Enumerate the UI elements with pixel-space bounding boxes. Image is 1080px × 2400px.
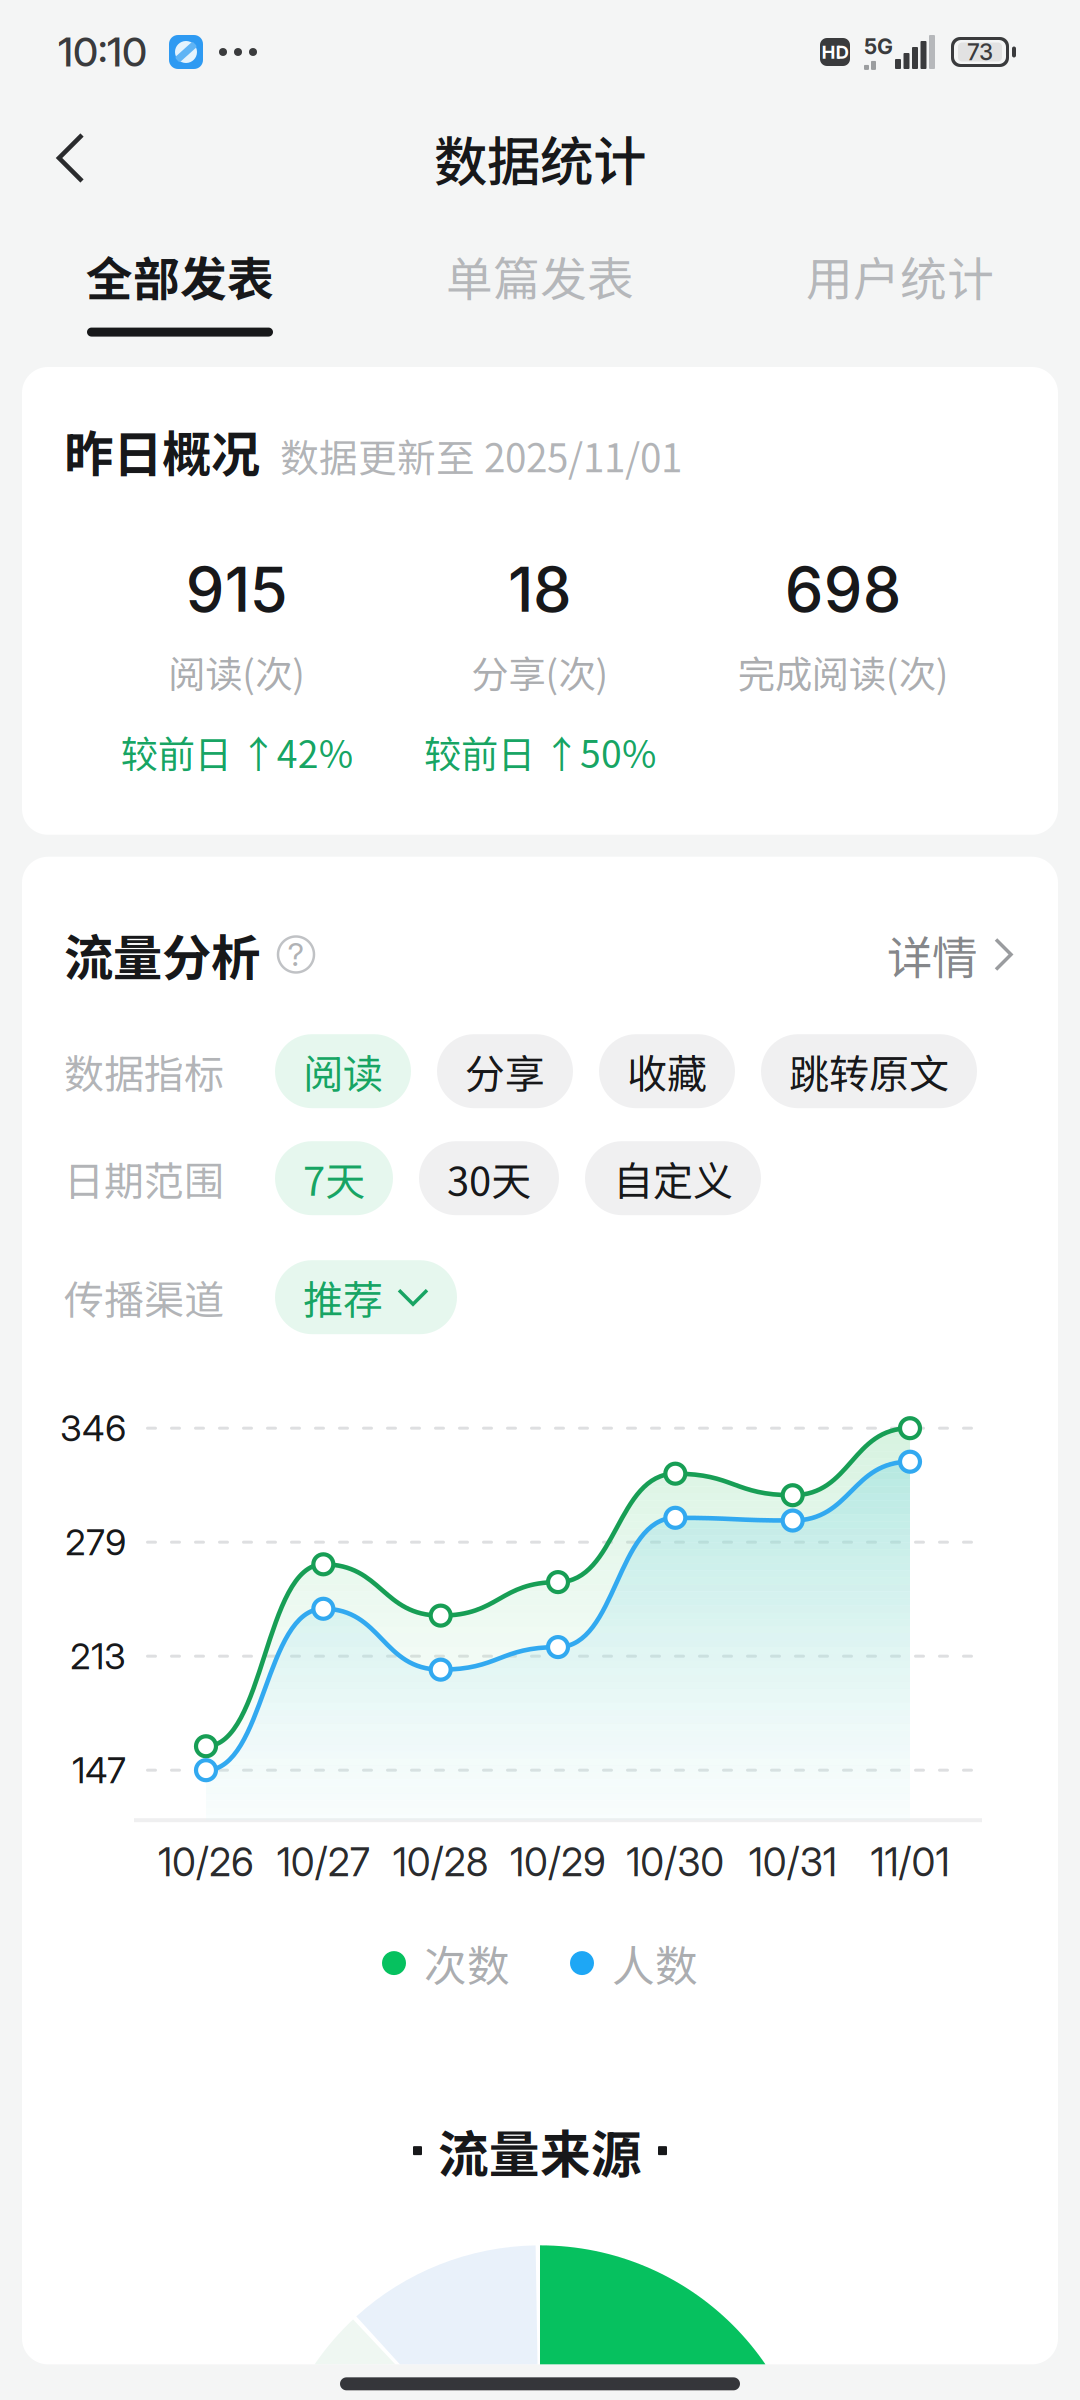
staticText: ? (287, 935, 304, 974)
staticText: 5G (864, 34, 893, 59)
button[interactable]: Back (22, 110, 118, 206)
staticText: 传播渠道 (64, 1268, 224, 1326)
staticText: 10/29 (510, 1839, 606, 1886)
staticText: 较前日 ↑50% (424, 725, 656, 779)
staticText: 7天 (303, 1149, 365, 1207)
staticText: 915 (186, 552, 288, 627)
staticText: HD (821, 41, 848, 63)
button[interactable]: 自定义 (585, 1141, 761, 1215)
staticText: 18 (508, 552, 572, 627)
staticText: 10:10 (58, 28, 147, 76)
button[interactable]: 详情 (887, 922, 1016, 987)
staticText: 昨日概况 (64, 415, 260, 486)
staticText: 单篇发表 (446, 242, 634, 310)
button[interactable]: 单篇发表 (360, 212, 720, 367)
button[interactable]: 分享 (437, 1034, 573, 1108)
staticText: 阅读(次) (168, 645, 305, 699)
staticText: 次数 (424, 1932, 510, 1994)
staticText: 数据更新至 2025/11/01 (280, 427, 682, 483)
staticText: 流量分析 (64, 919, 260, 990)
staticText: 推荐 (303, 1268, 383, 1326)
button[interactable]: 用户统计 (720, 212, 1080, 367)
button[interactable]: 阅读 (275, 1034, 411, 1108)
staticText: 日期范围 (64, 1149, 224, 1207)
staticText: 10/30 (626, 1839, 724, 1886)
button[interactable]: 7天 (275, 1141, 393, 1215)
staticText: 10/27 (277, 1839, 370, 1886)
staticText: 自定义 (613, 1149, 733, 1207)
button[interactable]: Help (276, 934, 316, 974)
staticText: 分享(次) (471, 645, 608, 699)
staticText: 30天 (447, 1149, 531, 1207)
staticText: 213 (70, 1634, 126, 1678)
staticText: 较前日 ↑42% (121, 725, 353, 779)
staticText: 10/31 (749, 1839, 837, 1886)
staticText: 147 (72, 1748, 126, 1792)
staticText: 数据统计 (434, 119, 646, 197)
staticText: 346 (60, 1406, 126, 1450)
staticText: 11/01 (870, 1839, 949, 1886)
button[interactable]: 跳转原文 (761, 1034, 977, 1108)
staticText: 完成阅读(次) (738, 645, 949, 699)
button[interactable]: 30天 (419, 1141, 559, 1215)
staticText: 用户统计 (806, 242, 994, 310)
staticText: 全部发表 (86, 242, 274, 310)
staticText: 279 (65, 1520, 126, 1564)
staticText: 698 (785, 552, 902, 627)
staticText: 73 (967, 38, 993, 66)
staticText: 10/28 (393, 1839, 489, 1886)
staticText: 分享 (465, 1042, 545, 1100)
button[interactable]: 推荐 (275, 1260, 457, 1334)
staticText: 阅读 (303, 1042, 383, 1100)
button[interactable]: 收藏 (599, 1034, 735, 1108)
staticText: 10/26 (158, 1839, 254, 1886)
staticText: 详情 (887, 922, 977, 987)
button[interactable]: 全部发表 (0, 212, 360, 367)
staticText: 跳转原文 (789, 1042, 949, 1100)
staticText: 收藏 (627, 1042, 707, 1100)
staticText: 数据指标 (64, 1042, 224, 1100)
staticText: 流量来源 (438, 2114, 642, 2187)
staticText: 人数 (612, 1932, 698, 1994)
